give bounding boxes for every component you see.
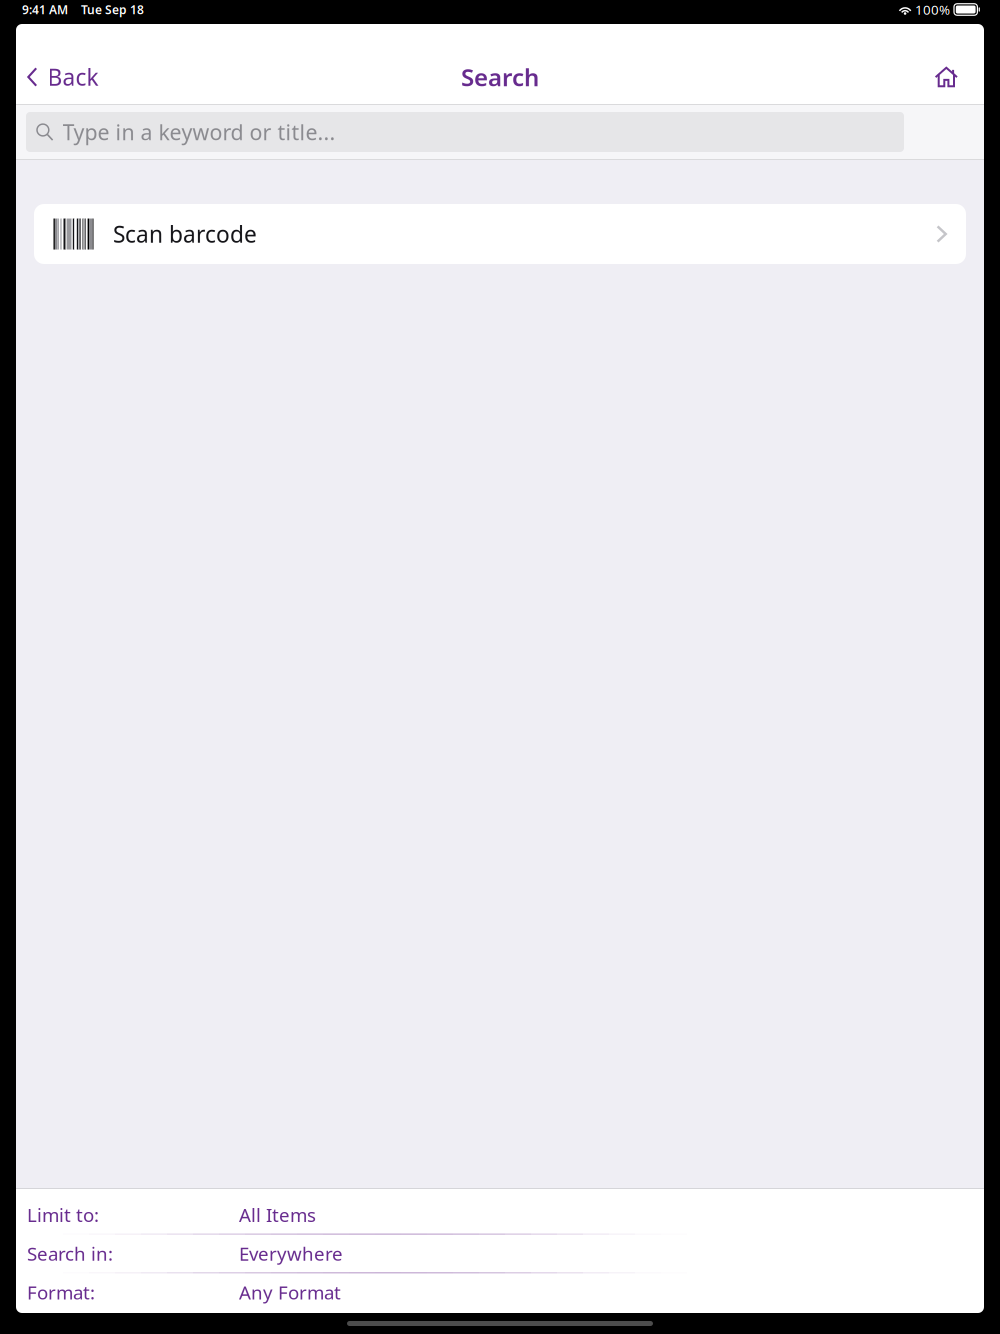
staticText: Scan barcode bbox=[113, 219, 257, 249]
staticText: All Items bbox=[239, 1202, 316, 1227]
staticText: Search in: bbox=[27, 1241, 113, 1266]
staticText: Everywhere bbox=[239, 1241, 343, 1266]
staticText: Search bbox=[461, 61, 539, 93]
staticText: Back bbox=[47, 62, 98, 92]
staticText: Any Format bbox=[239, 1280, 341, 1305]
staticText: Type in a keyword or title... bbox=[63, 118, 336, 146]
staticText: Tue Sep 18 bbox=[81, 1, 144, 17]
button[interactable]: Type in a keyword or title... bbox=[26, 112, 904, 152]
button[interactable]: Scan barcode bbox=[34, 204, 966, 264]
staticText: Limit to: bbox=[27, 1202, 99, 1227]
button[interactable]: Format: bbox=[16, 1273, 984, 1311]
button[interactable]: Limit to: bbox=[16, 1196, 984, 1234]
button[interactable]: Back bbox=[16, 51, 109, 103]
staticText: 9:41 AM bbox=[22, 1, 68, 17]
button[interactable]: Home bbox=[923, 55, 970, 99]
staticText: Format: bbox=[27, 1280, 95, 1305]
button[interactable]: Search in: bbox=[16, 1235, 984, 1272]
staticText: 100% bbox=[915, 1, 950, 18]
